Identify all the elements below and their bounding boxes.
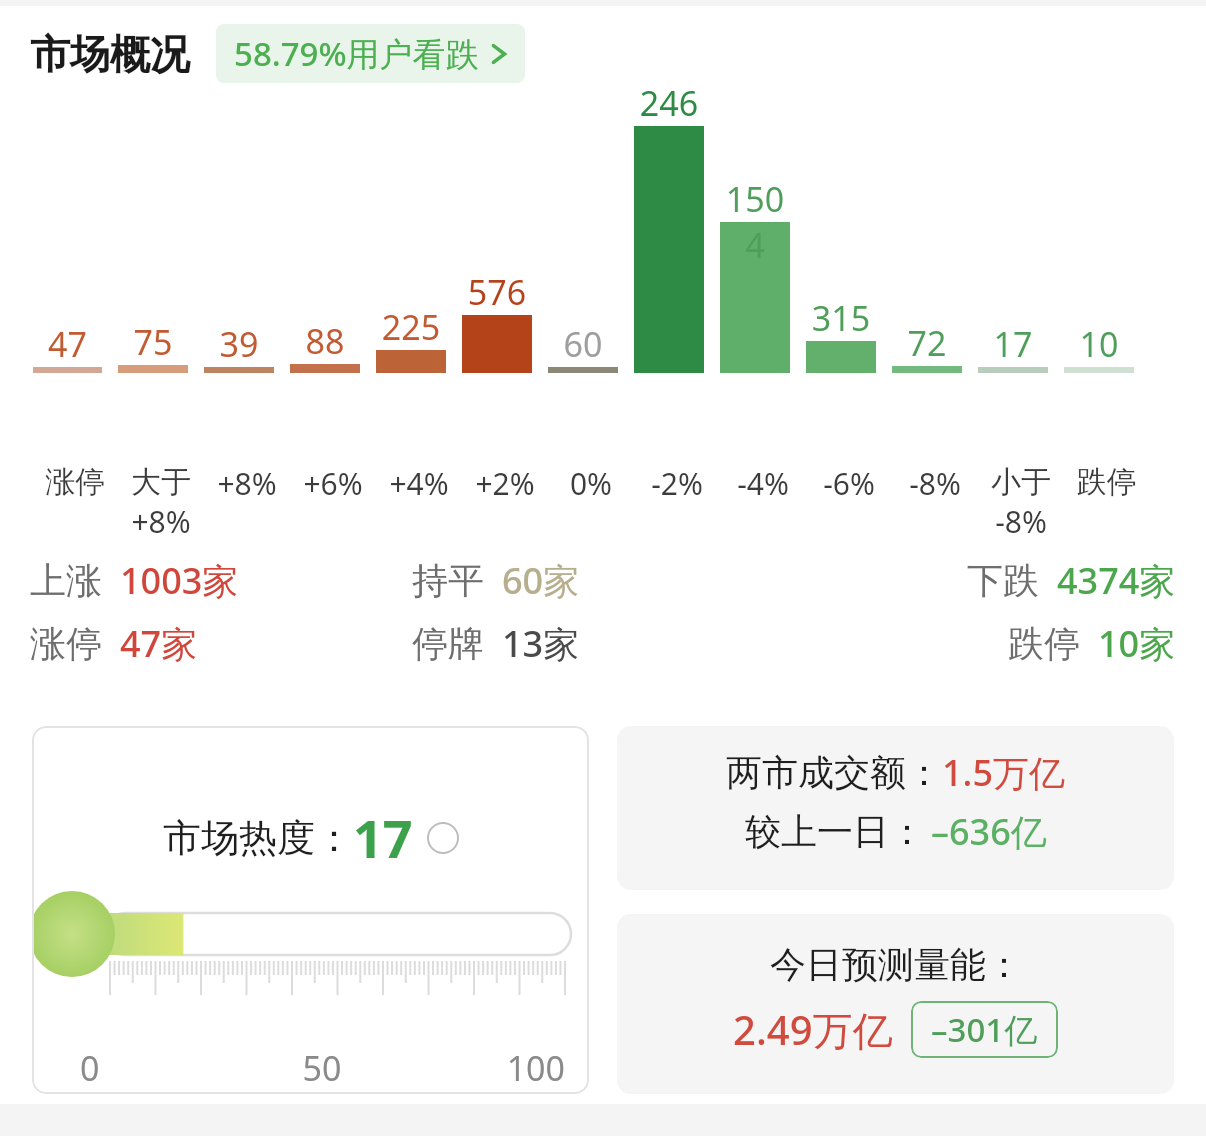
staticText: 0	[80, 1045, 241, 1091]
button[interactable]: +4%	[376, 463, 462, 504]
staticText: 市场热度：	[163, 814, 353, 862]
staticText: -4%	[720, 463, 806, 504]
staticText: 两市成交额：	[726, 750, 942, 795]
button[interactable]: 大于	[118, 463, 204, 542]
button[interactable]: +8%	[204, 463, 290, 504]
button[interactable]: 58.79%用户看跌	[216, 24, 525, 83]
button[interactable]: –301亿	[911, 1001, 1058, 1058]
button[interactable]: 涨停	[30, 619, 412, 668]
staticText: 涨停	[33, 463, 118, 501]
staticText: 2.49万亿	[733, 1002, 893, 1057]
staticText: 停牌	[412, 621, 484, 666]
button[interactable]: +2%	[462, 463, 548, 504]
button[interactable]: +6%	[290, 463, 376, 504]
staticText: –636亿	[931, 807, 1047, 856]
staticText: 1.5万亿	[942, 748, 1065, 797]
staticText: +8%	[204, 463, 290, 504]
staticText: +2%	[462, 463, 548, 504]
staticText: 跌停	[1008, 621, 1080, 666]
staticText: –301亿	[931, 1007, 1038, 1052]
staticText: 较上一日：	[745, 809, 925, 854]
staticText: 225	[376, 304, 446, 350]
staticText: 市场概况	[30, 29, 190, 79]
staticText: 4374家	[1057, 556, 1176, 605]
staticText: +8%	[118, 501, 204, 542]
staticText: 1504	[720, 176, 790, 268]
staticText: 58.79%用户看跌	[234, 31, 479, 76]
staticText: 39	[204, 321, 274, 367]
staticText: 72	[892, 320, 962, 366]
staticText: 50	[241, 1045, 403, 1091]
staticText: 0%	[548, 463, 634, 504]
button[interactable]: 今日预测量能：	[617, 914, 1174, 1094]
staticText: 47家	[120, 619, 198, 668]
staticText: 下跌	[967, 558, 1039, 603]
button[interactable]: 小于	[978, 463, 1064, 542]
button[interactable]: 持平	[412, 556, 794, 605]
staticText: -8%	[978, 501, 1064, 542]
staticText: 60	[548, 321, 618, 367]
staticText: 47	[33, 321, 102, 367]
button[interactable]: 0%	[548, 463, 634, 504]
staticText: -6%	[806, 463, 892, 504]
staticText: 10家	[1098, 619, 1176, 668]
staticText: 大于	[118, 463, 204, 501]
staticText: 跌停	[1064, 463, 1150, 501]
staticText: +4%	[376, 463, 462, 504]
staticText: 60家	[502, 556, 580, 605]
button[interactable]: -2%	[634, 463, 720, 504]
button[interactable]: 停牌	[412, 619, 794, 668]
staticText: 100	[403, 1045, 565, 1091]
button[interactable]: 上涨	[30, 556, 412, 605]
staticText: 576	[462, 269, 532, 315]
staticText: 1003家	[120, 556, 239, 605]
staticText: +6%	[290, 463, 376, 504]
staticText: 75	[118, 319, 188, 365]
staticText: 17	[978, 321, 1048, 367]
staticText: -8%	[892, 463, 978, 504]
button[interactable]: -6%	[806, 463, 892, 504]
button[interactable]: 下跌	[794, 556, 1176, 605]
staticText: 10	[1064, 321, 1134, 367]
staticText: 88	[290, 318, 360, 364]
button[interactable]: 跌停	[794, 619, 1176, 668]
staticText: 13家	[502, 619, 580, 668]
button[interactable]: 跌停	[1064, 463, 1150, 501]
staticText: 今日预测量能：	[770, 942, 1022, 987]
staticText: 涨停	[30, 621, 102, 666]
button[interactable]: 两市成交额：	[617, 726, 1174, 890]
button[interactable]: -8%	[892, 463, 978, 504]
staticText: 2466	[634, 80, 704, 172]
staticText: 17	[353, 802, 413, 873]
button[interactable]: -4%	[720, 463, 806, 504]
staticText: 上涨	[30, 558, 102, 603]
staticText: 持平	[412, 558, 484, 603]
staticText: -2%	[634, 463, 720, 504]
other: 说明	[427, 822, 459, 854]
button[interactable]: 涨停	[33, 463, 118, 501]
staticText: 小于	[978, 463, 1064, 501]
button[interactable]: 市场热度：	[32, 726, 589, 1094]
staticText: 315	[806, 295, 876, 341]
